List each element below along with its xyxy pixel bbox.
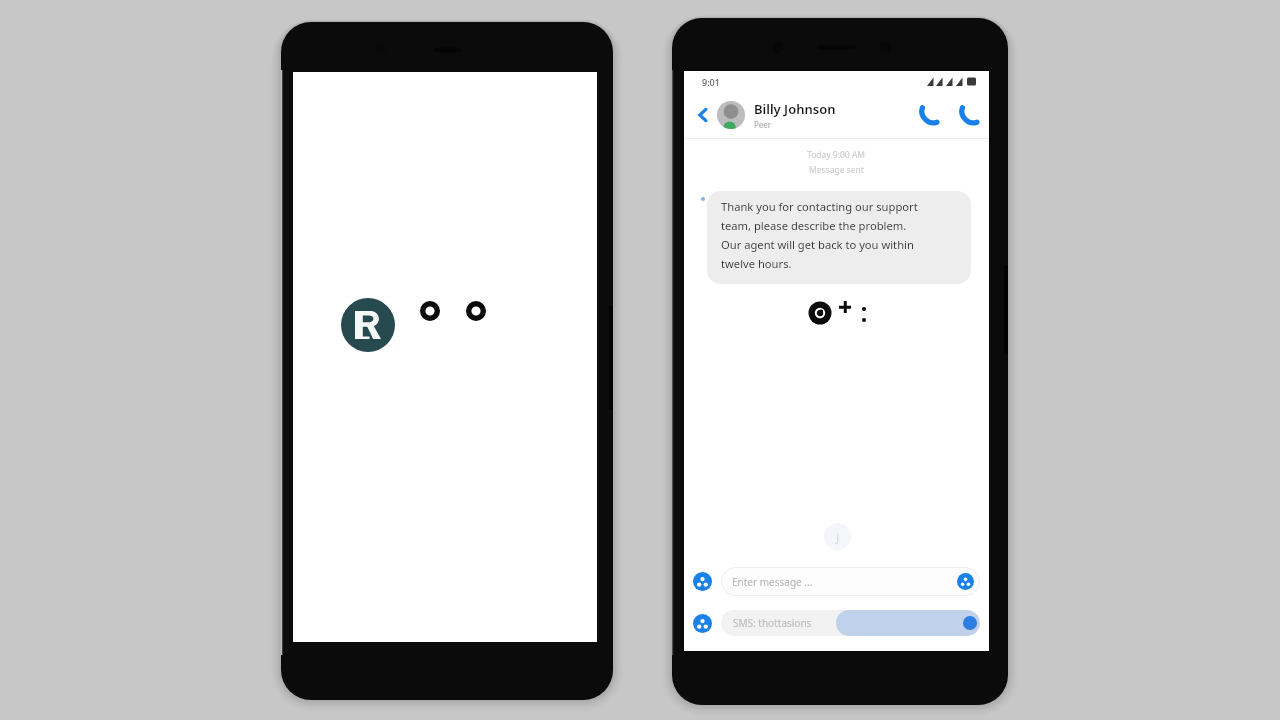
button[interactable]: App logo <box>341 298 395 352</box>
button[interactable]: Thank you for contacting our support tea… <box>707 191 971 284</box>
staticText: Today 9:00 AM <box>807 149 866 161</box>
button[interactable]: Enter message ... <box>721 567 980 596</box>
staticText: Peer <box>754 119 772 130</box>
button[interactable]: Send <box>957 573 974 590</box>
staticText: Thank you for contacting our support tea… <box>721 199 918 271</box>
staticText: J <box>836 529 840 545</box>
button[interactable]: SMS: thottasions <box>721 610 980 636</box>
button[interactable]: Add attachment <box>838 300 852 314</box>
staticText: 9:01 <box>702 76 720 88</box>
button[interactable]: Attach <box>693 572 712 591</box>
staticText: Message sent <box>809 164 864 176</box>
button[interactable]: Share <box>693 614 712 633</box>
button[interactable]: Voice message <box>808 301 832 325</box>
button[interactable]: Call <box>959 105 979 125</box>
staticText: SMS: thottasions <box>733 616 812 630</box>
staticText: Billy Johnson <box>754 100 836 118</box>
button[interactable]: More options <box>860 303 868 325</box>
button[interactable]: Back <box>692 104 714 126</box>
button[interactable]: Contact avatar <box>717 101 745 129</box>
button[interactable]: Call <box>919 105 939 125</box>
staticText: Enter message ... <box>732 575 813 589</box>
